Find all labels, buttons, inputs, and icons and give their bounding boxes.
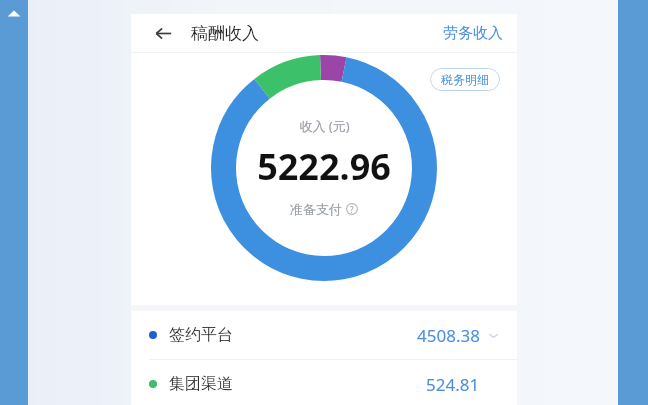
staticText: 稿酬收入 — [191, 23, 259, 44]
staticText: 收入 (元) — [299, 117, 350, 135]
staticText: 5222.96 — [257, 142, 391, 191]
button[interactable]: 签约平台 — [131, 311, 517, 359]
button[interactable]: Collapse panel — [0, 0, 28, 405]
staticText: 524.81 — [426, 373, 480, 396]
button[interactable]: 集团渠道 — [131, 360, 517, 405]
other: Help — [346, 203, 358, 215]
staticText: 集团渠道 — [169, 374, 233, 394]
staticText: 签约平台 — [169, 325, 233, 345]
staticText: 税务明细 — [441, 72, 489, 87]
button[interactable]: 准备支付 — [286, 199, 362, 219]
staticText: ? — [350, 204, 354, 215]
button[interactable]: Back — [148, 18, 178, 48]
button[interactable]: 劳务收入 — [429, 18, 517, 49]
staticText: 准备支付 — [290, 201, 342, 217]
staticText: 4508.38 — [417, 324, 480, 347]
button[interactable]: 税务明细 — [430, 68, 500, 91]
staticText: 劳务收入 — [443, 24, 503, 43]
